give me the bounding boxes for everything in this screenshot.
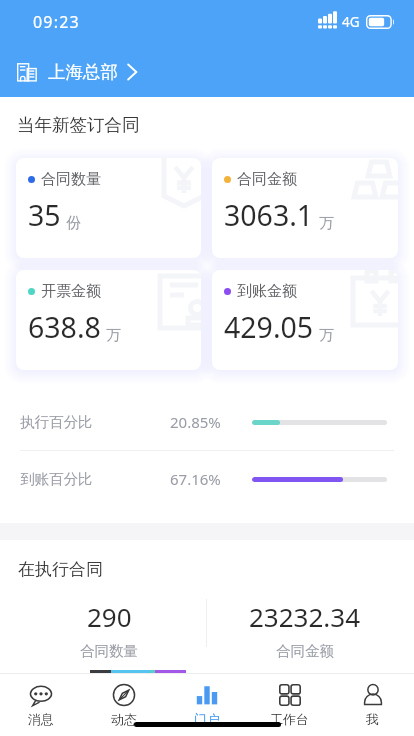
staticText: 3063.1 xyxy=(224,196,314,235)
button[interactable]: 工作台 xyxy=(248,673,331,736)
button[interactable]: 消息 xyxy=(0,673,82,736)
staticText: 万 xyxy=(319,214,334,233)
staticText: 合同金额 xyxy=(276,642,334,659)
staticText: 到账百分比 xyxy=(20,470,93,488)
staticText: 到账金额 xyxy=(237,282,297,301)
staticText: 上海总部 xyxy=(48,61,118,83)
staticText: 4G xyxy=(342,13,360,31)
staticText: 合同数量 xyxy=(41,170,101,189)
staticText: 执行百分比 xyxy=(20,413,93,431)
staticText: 20.85% xyxy=(170,412,221,432)
staticText: 当年新签订合同 xyxy=(17,114,140,136)
staticText: 份 xyxy=(66,214,81,233)
staticText: 门户 xyxy=(194,711,220,727)
button[interactable]: 执行百分比 xyxy=(0,394,414,450)
staticText: 429.05 xyxy=(224,308,314,347)
button[interactable]: 合同金额 xyxy=(212,158,398,258)
button[interactable]: 门户 xyxy=(165,673,248,736)
button[interactable]: 动态 xyxy=(82,673,165,736)
button[interactable]: Company xyxy=(0,46,414,97)
staticText: 在执行合同 xyxy=(18,559,103,580)
staticText: 消息 xyxy=(28,711,54,727)
button[interactable]: 到账百分比 xyxy=(0,451,414,507)
other: Switch organisation xyxy=(126,63,138,81)
staticText: 万 xyxy=(319,326,334,345)
staticText: 我 xyxy=(366,711,379,727)
staticText: 合同数量 xyxy=(80,642,138,659)
staticText: 合同金额 xyxy=(237,170,297,189)
other: Company xyxy=(17,61,38,82)
staticText: 23232.34 xyxy=(249,599,361,634)
staticText: 开票金额 xyxy=(41,282,101,301)
button[interactable]: 开票金额 xyxy=(16,270,201,370)
staticText: 638.8 xyxy=(28,308,101,347)
button[interactable]: 合同数量 xyxy=(16,158,201,258)
button[interactable]: 23232.34 xyxy=(207,599,402,659)
button[interactable]: 到账金额 xyxy=(212,270,398,370)
button[interactable]: 我 xyxy=(331,673,414,736)
staticText: 工作台 xyxy=(270,711,309,727)
button[interactable]: 290 xyxy=(12,599,206,659)
staticText: 290 xyxy=(87,599,132,634)
staticText: 67.16% xyxy=(170,469,221,489)
staticText: 09:23 xyxy=(33,11,80,33)
staticText: 万 xyxy=(106,326,121,345)
staticText: 动态 xyxy=(111,711,137,727)
staticText: 35 xyxy=(28,196,61,235)
